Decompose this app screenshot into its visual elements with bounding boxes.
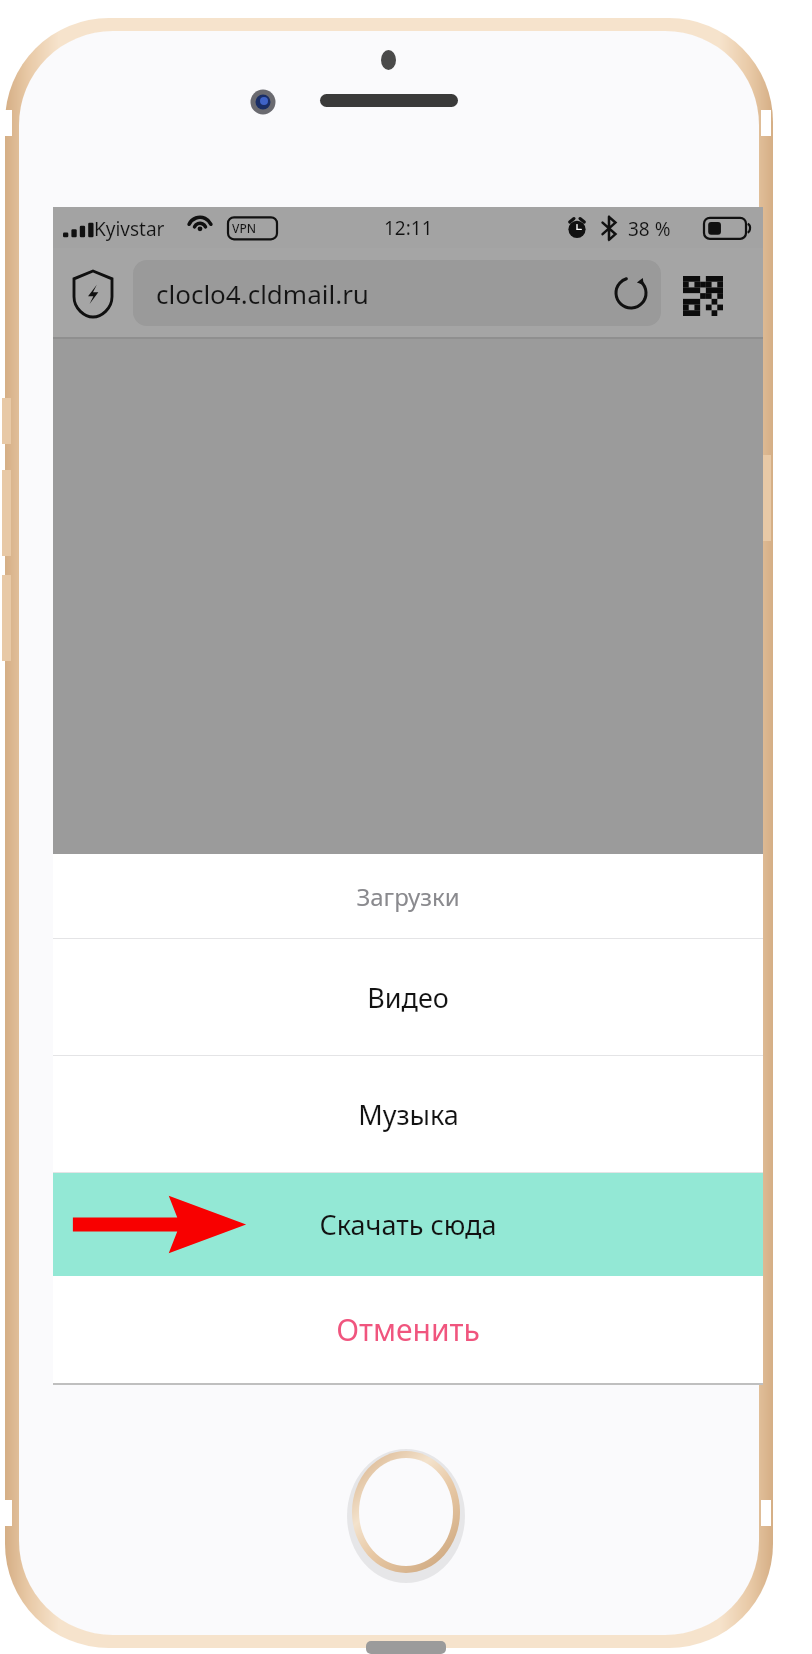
staticText: Музыка	[358, 1096, 459, 1133]
staticText: VPN	[232, 220, 257, 236]
staticText: Видео	[367, 979, 449, 1016]
staticText: Загрузки	[356, 880, 460, 913]
button[interactable]: Отменить	[53, 1276, 763, 1383]
staticText: 38 %	[628, 216, 671, 242]
button[interactable]: Scan QR code	[675, 268, 727, 320]
staticText: 12:11	[384, 215, 433, 241]
button[interactable]: Загрузки	[53, 854, 763, 938]
button[interactable]: cloclo4.cldmail.ru	[133, 260, 661, 326]
staticText: cloclo4.cldmail.ru	[156, 276, 369, 311]
staticText: Отменить	[336, 1309, 480, 1350]
button[interactable]: Adblock shield	[65, 266, 121, 322]
button[interactable]: Reload	[605, 265, 661, 321]
button[interactable]: Музыка	[53, 1056, 763, 1172]
staticText: Скачать сюда	[319, 1206, 497, 1243]
button[interactable]: Видео	[53, 939, 763, 1055]
button[interactable]: Скачать сюда	[53, 1173, 763, 1276]
staticText: Kyivstar	[94, 216, 165, 242]
